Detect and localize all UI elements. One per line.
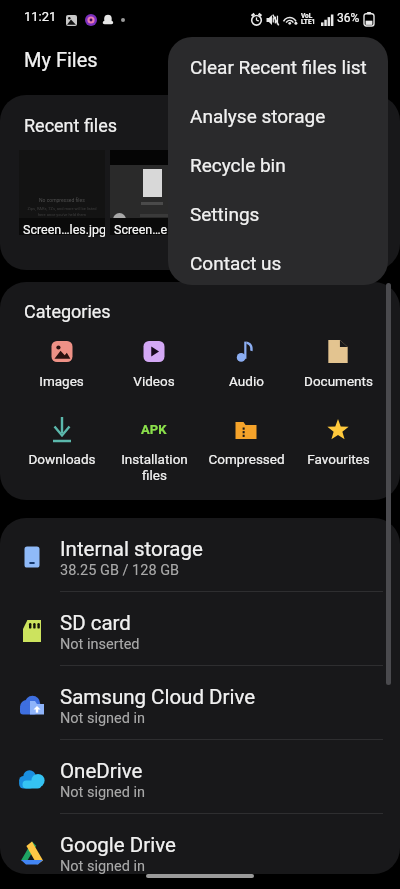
staticText: 11:21 [24, 9, 57, 24]
staticText: Settings [190, 203, 260, 225]
staticText: Contact us [190, 252, 282, 274]
staticText: Screen…er [114, 222, 172, 237]
button[interactable]: Videos [108, 341, 200, 389]
button[interactable]: Recycle bin [168, 140, 388, 189]
staticText: Recent files [24, 115, 118, 136]
button[interactable]: Screen…er [110, 150, 196, 235]
button[interactable]: SD card [0, 592, 400, 666]
button[interactable]: Favourites [292, 419, 384, 467]
button[interactable]: Compressed [200, 419, 292, 467]
button[interactable]: Settings [168, 189, 388, 238]
staticText: Not signed in [60, 784, 146, 801]
staticText: Recycle bin [190, 154, 286, 176]
staticText: VoL [301, 12, 313, 20]
staticText: 38.25 GB / 128 GB [60, 562, 180, 579]
button[interactable]: Internal storage [0, 518, 400, 592]
staticText: Videos [133, 373, 175, 389]
button[interactable]: APK [108, 419, 200, 483]
button[interactable]: Google Drive [0, 814, 400, 874]
staticText: Not signed in [60, 710, 146, 727]
button[interactable]: Audio [200, 341, 292, 389]
staticText: Audio [229, 373, 264, 389]
staticText: Google Drive [60, 833, 176, 857]
button[interactable]: Images [15, 341, 108, 389]
button[interactable]: OneDrive [0, 740, 400, 814]
staticText: 36% [337, 11, 360, 25]
staticText: OneDrive [60, 759, 143, 783]
staticText: Screen…les.jpg [23, 222, 105, 237]
staticText: Downloads [28, 451, 96, 467]
staticText: Images [39, 373, 84, 389]
staticText: SD card [60, 611, 131, 635]
staticText: Analyse storage [190, 105, 326, 127]
staticText: Installation files [121, 451, 188, 483]
staticText: Favourites [307, 451, 370, 467]
staticText: Zips, RARs, 7Zs, and more will be listed… [27, 206, 97, 217]
staticText: Categories [24, 301, 111, 322]
staticText: APK [141, 422, 167, 437]
button[interactable]: Samsung Cloud Drive [0, 666, 400, 740]
button[interactable]: Clear Recent files list [168, 42, 388, 91]
staticText: No compressed files [39, 197, 85, 203]
staticText: My Files [24, 48, 98, 71]
staticText: Documents [304, 373, 373, 389]
button[interactable]: Documents [292, 341, 384, 389]
button[interactable]: No compressed files [19, 150, 105, 235]
staticText: Clear Recent files list [190, 56, 367, 78]
staticText: Internal storage [60, 537, 203, 561]
button[interactable]: Analyse storage [168, 91, 388, 140]
staticText: LTE1 [301, 18, 316, 26]
staticText: Not inserted [60, 636, 140, 653]
staticText: Not signed in [60, 858, 146, 874]
staticText: Samsung Cloud Drive [60, 685, 256, 709]
button[interactable]: Downloads [15, 419, 108, 467]
button[interactable]: Contact us [168, 238, 388, 285]
staticText: Compressed [208, 451, 285, 467]
